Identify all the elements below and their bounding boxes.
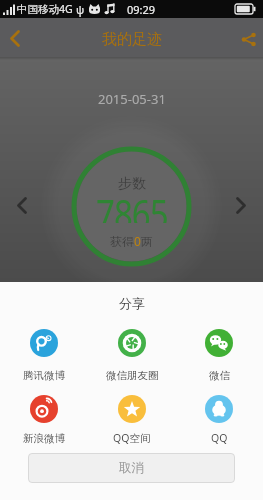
- button[interactable]: [236, 26, 262, 52]
- staticText: QQ空间: [113, 431, 151, 445]
- button[interactable]: [2, 25, 28, 51]
- staticText: 新浪微博: [23, 432, 65, 445]
- staticText: 微信朋友圈: [106, 369, 159, 382]
- button[interactable]: [6, 190, 38, 222]
- staticText: 2015-05-31: [98, 90, 166, 106]
- button[interactable]: [89, 389, 175, 448]
- staticText: 分享: [119, 295, 145, 311]
- button[interactable]: [1, 323, 87, 385]
- staticText: 中国移动4G: [17, 2, 73, 16]
- staticText: 取消: [119, 460, 144, 476]
- button[interactable]: [176, 389, 262, 448]
- staticText: 7865: [96, 187, 168, 223]
- staticText: 微信: [209, 369, 230, 382]
- staticText: 步数: [118, 175, 146, 191]
- staticText: QQ: [211, 431, 228, 445]
- staticText: 我的足迹: [102, 30, 162, 49]
- button[interactable]: [89, 323, 175, 385]
- button[interactable]: [1, 389, 87, 448]
- button[interactable]: 取消: [28, 453, 235, 483]
- button[interactable]: [176, 323, 262, 385]
- staticText: 腾讯微博: [23, 369, 65, 382]
- button[interactable]: [226, 190, 258, 222]
- staticText: ψ: [76, 2, 85, 17]
- staticText: 获得0两: [110, 233, 153, 247]
- staticText: 09:29: [127, 2, 156, 17]
